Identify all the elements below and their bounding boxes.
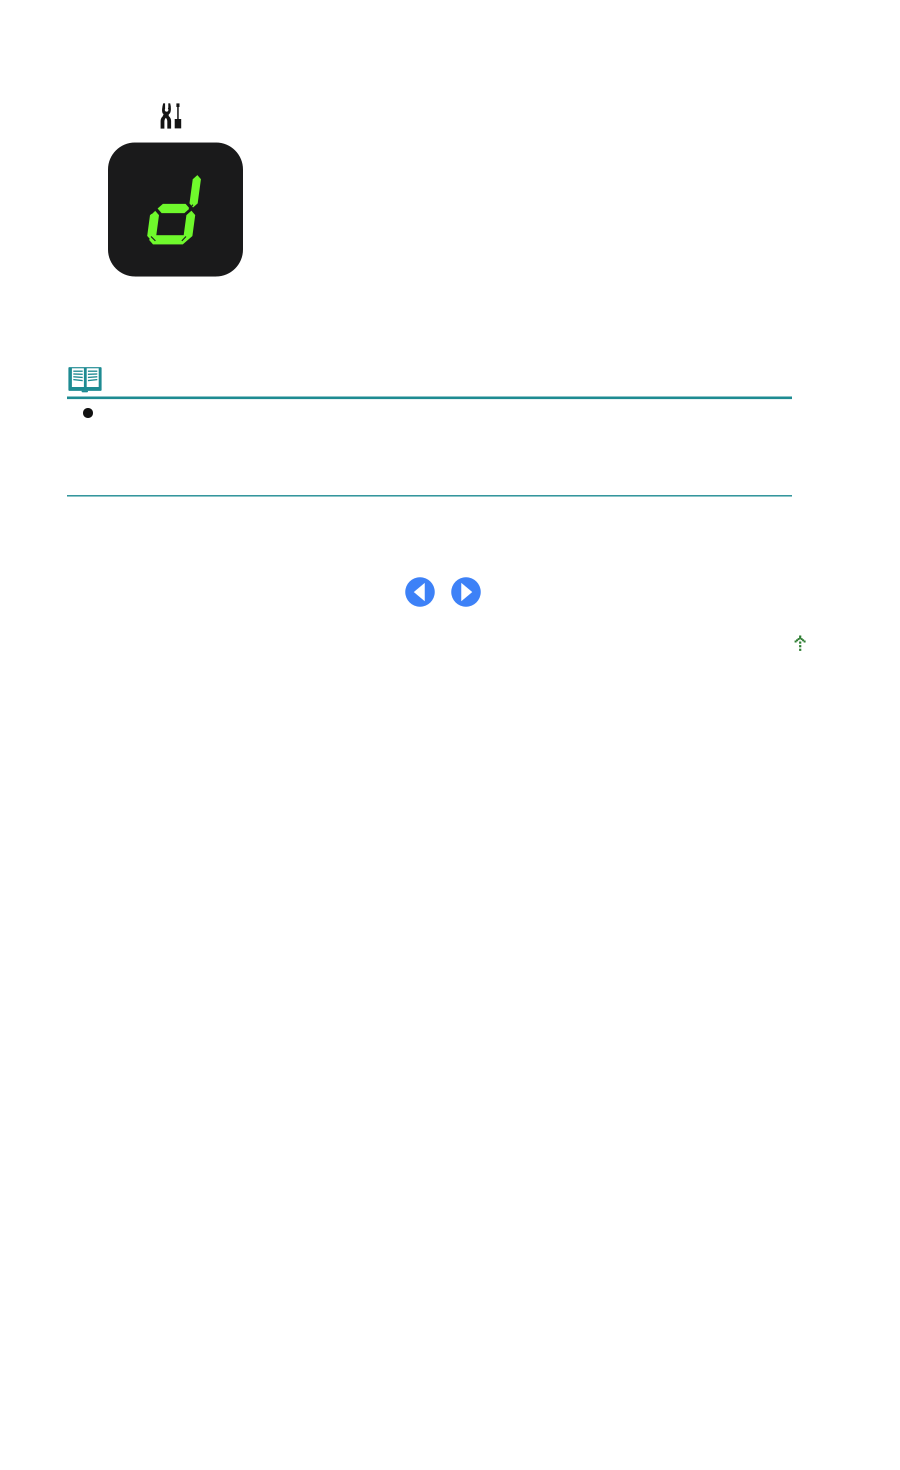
button[interactable]: Next page xyxy=(451,577,481,607)
button[interactable]: Back to top xyxy=(794,635,806,651)
button[interactable]: Previous page xyxy=(405,577,435,607)
